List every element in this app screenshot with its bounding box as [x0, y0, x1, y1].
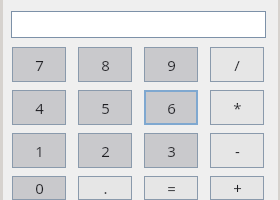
button[interactable]: 3 [144, 133, 198, 168]
staticText: 7 [35, 55, 44, 75]
staticText: = [167, 178, 176, 198]
button[interactable]: 0 [12, 176, 66, 200]
button[interactable]: 1 [12, 133, 66, 168]
button[interactable] [11, 11, 266, 38]
staticText: . [103, 178, 108, 198]
staticText: 5 [101, 98, 110, 118]
staticText: 3 [167, 141, 176, 161]
button[interactable]: - [210, 133, 264, 168]
staticText: / [234, 55, 240, 75]
button[interactable]: + [210, 176, 264, 200]
staticText: + [233, 178, 242, 198]
staticText: 4 [35, 98, 44, 118]
staticText: 0 [35, 178, 44, 198]
button[interactable]: 8 [78, 47, 132, 82]
staticText: * [233, 98, 242, 118]
staticText: 1 [35, 141, 44, 161]
button[interactable]: 2 [78, 133, 132, 168]
button[interactable]: 5 [78, 90, 132, 125]
button[interactable]: / [210, 47, 264, 82]
button[interactable]: . [78, 176, 132, 200]
button[interactable]: = [144, 176, 198, 200]
button[interactable]: 9 [144, 47, 198, 82]
staticText: 8 [101, 55, 110, 75]
staticText: 9 [167, 55, 176, 75]
staticText: - [235, 141, 240, 161]
button[interactable]: 7 [12, 47, 66, 82]
button[interactable]: 4 [12, 90, 66, 125]
button[interactable]: 6 [144, 90, 198, 125]
staticText: 6 [167, 98, 176, 118]
button[interactable]: * [210, 90, 264, 125]
staticText: 2 [101, 141, 110, 161]
